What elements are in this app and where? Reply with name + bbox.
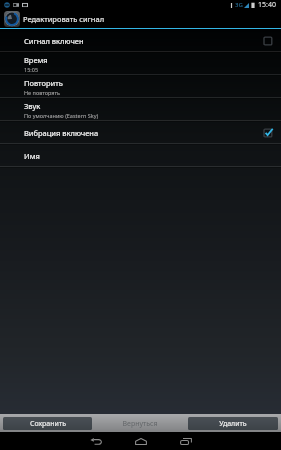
button[interactable]: Время — [0, 53, 281, 76]
button[interactable]: Back — [84, 434, 108, 449]
staticText: Сохранить — [30, 419, 66, 429]
staticText: Звук — [24, 101, 41, 111]
staticText: 15:40 — [258, 0, 276, 10]
button[interactable]: Сохранить — [3, 417, 92, 430]
staticText: Время — [24, 55, 48, 65]
staticText: Удалить — [219, 419, 247, 429]
staticText: Имя — [24, 151, 40, 161]
staticText: По умолчанию (Eastern Sky) — [24, 112, 99, 119]
staticText: Не повторять — [24, 89, 60, 96]
staticText: Повторить — [24, 78, 63, 88]
staticText: Вернуться — [122, 419, 158, 429]
button[interactable]: Повторить — [0, 76, 281, 99]
button[interactable]: Удалить — [188, 417, 278, 430]
button[interactable]: Recents — [174, 434, 198, 449]
button[interactable]: Вибрация включена — [0, 122, 281, 145]
button[interactable]: Home — [129, 434, 153, 449]
button[interactable]: Сигнал включен — [0, 30, 281, 53]
other: Alarm clock — [4, 11, 20, 27]
staticText: Сигнал включен — [24, 36, 84, 46]
staticText: Вибрация включена — [24, 128, 99, 138]
button[interactable]: Звук — [0, 99, 281, 122]
button[interactable]: Вернуться — [95, 417, 185, 430]
staticText: 15:05 — [24, 66, 39, 73]
staticText: 3G — [235, 1, 243, 9]
button[interactable]: Имя — [0, 145, 281, 168]
staticText: Редактировать сигнал — [23, 14, 105, 24]
